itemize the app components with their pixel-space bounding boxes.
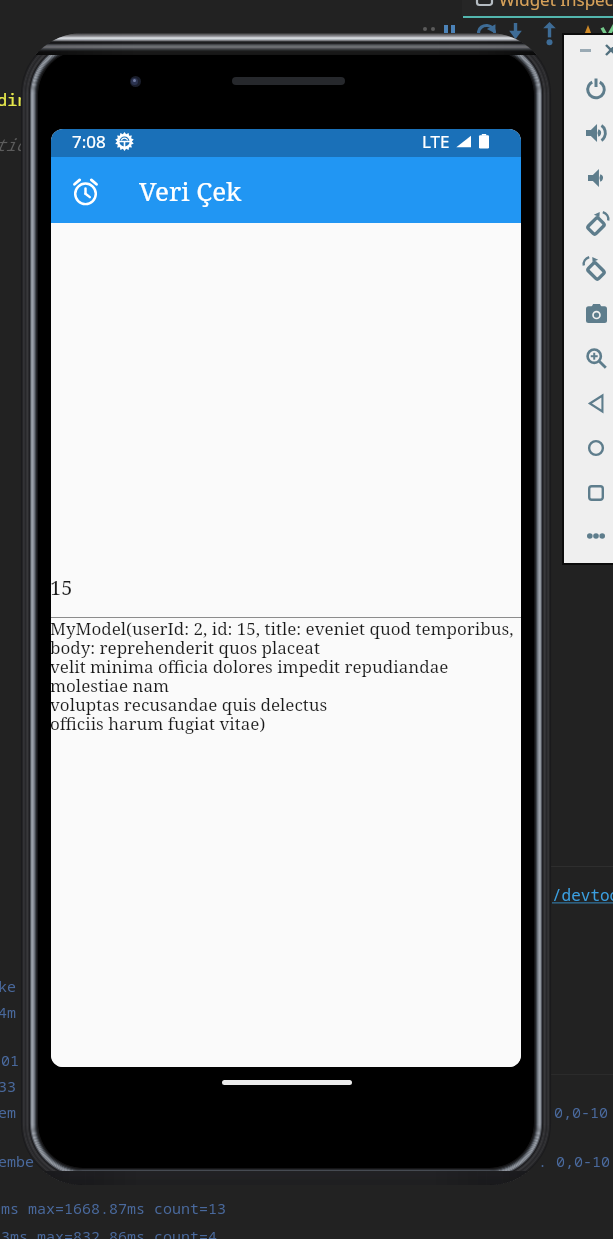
button[interactable]: Volume down	[583, 165, 609, 191]
staticText: 7:08	[72, 130, 106, 153]
staticText: . 0,0-10	[538, 1151, 611, 1171]
button[interactable]: Rotate right	[583, 255, 609, 281]
button[interactable]: Screenshot	[583, 300, 609, 326]
staticText: Widget Inspector	[499, 0, 613, 11]
button[interactable]: Back	[583, 390, 609, 416]
staticText: Veri Çek	[139, 173, 242, 208]
button[interactable]: Power	[583, 75, 609, 101]
button[interactable]: More	[583, 523, 609, 549]
staticText: 101	[0, 1050, 20, 1070]
button[interactable]: Alarm	[65, 170, 105, 210]
staticText: tio	[0, 133, 26, 156]
button[interactable]: Rotate left	[583, 210, 609, 236]
button[interactable]: Home	[583, 435, 609, 461]
button[interactable]: Volume up	[583, 120, 609, 146]
staticText: 53ms max=832.86ms count=4	[0, 1226, 218, 1239]
staticText: .33	[0, 1076, 17, 1096]
button[interactable]: Zoom	[583, 345, 609, 371]
staticText: /devtool	[552, 884, 613, 906]
button[interactable]: Overview	[583, 480, 609, 506]
staticText: 15	[51, 574, 73, 601]
staticText: oke	[0, 976, 17, 996]
staticText: din	[0, 88, 28, 111]
staticText: 24m	[0, 1002, 17, 1022]
staticText: LTE	[422, 130, 450, 153]
staticText: .embe	[0, 1151, 35, 1171]
staticText: MyModel(userId: 2, id: 15, title: evenie…	[51, 617, 514, 735]
button[interactable]: Close	[604, 43, 613, 57]
staticText: 0,0-10	[554, 1102, 609, 1122]
staticText: 9ms max=1668.87ms count=13	[0, 1198, 227, 1218]
staticText: .em	[0, 1102, 17, 1122]
